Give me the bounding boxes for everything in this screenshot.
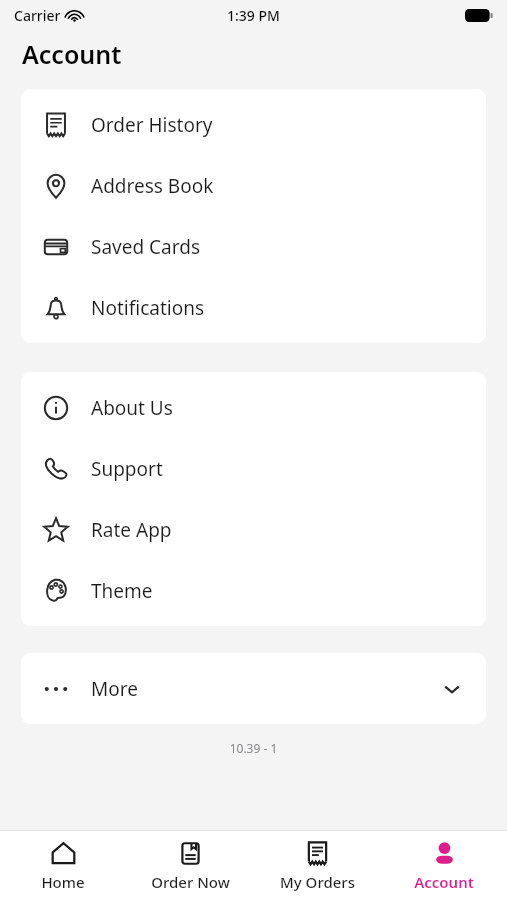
staticText: Order History bbox=[91, 112, 213, 138]
staticText: 10.39 - 1 bbox=[0, 740, 507, 756]
staticText: Home bbox=[41, 872, 85, 892]
button[interactable]: Theme bbox=[21, 560, 486, 621]
staticText: Address Book bbox=[91, 173, 214, 199]
button[interactable]: Home bbox=[3, 840, 123, 892]
button[interactable]: Address Book bbox=[21, 155, 486, 216]
staticText: 1:39 PM bbox=[227, 6, 280, 25]
button[interactable]: Account bbox=[384, 840, 504, 892]
staticText: Notifications bbox=[91, 295, 205, 321]
button[interactable]: Rate App bbox=[21, 499, 486, 560]
staticText: Carrier bbox=[14, 6, 61, 25]
button[interactable]: Support bbox=[21, 438, 486, 499]
button[interactable]: About Us bbox=[21, 377, 486, 438]
staticText: Account bbox=[414, 872, 474, 892]
staticText: Support bbox=[91, 456, 163, 482]
button[interactable]: Notifications bbox=[21, 277, 486, 338]
button[interactable]: Order History bbox=[21, 94, 486, 155]
button[interactable]: My Orders bbox=[257, 840, 377, 892]
button[interactable]: Order Now bbox=[130, 840, 250, 892]
staticText: Order Now bbox=[151, 872, 230, 892]
button[interactable]: Saved Cards bbox=[21, 216, 486, 277]
staticText: More bbox=[91, 676, 138, 702]
staticText: Theme bbox=[91, 578, 153, 604]
staticText: Saved Cards bbox=[91, 234, 201, 260]
staticText: Account bbox=[22, 37, 122, 71]
button[interactable]: More bbox=[21, 653, 486, 724]
staticText: Rate App bbox=[91, 517, 172, 543]
staticText: About Us bbox=[91, 395, 173, 421]
staticText: My Orders bbox=[280, 872, 355, 892]
